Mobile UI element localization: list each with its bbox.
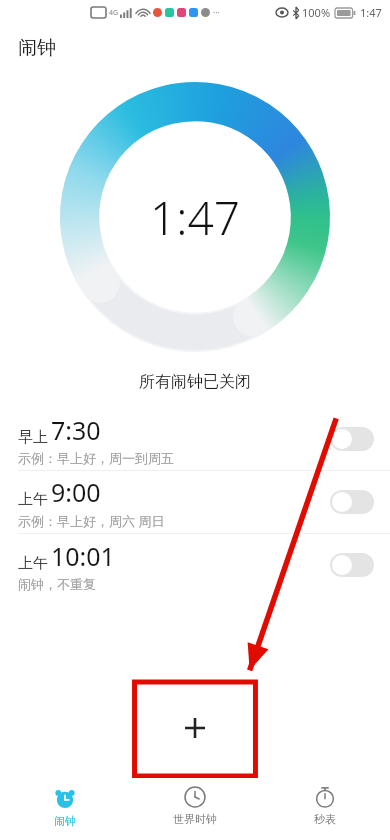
- staticText: 闹钟，不重复: [18, 576, 96, 592]
- button[interactable]: 上午: [0, 471, 390, 533]
- button[interactable]: 世界时钟: [130, 778, 260, 840]
- staticText: 世界时钟: [173, 812, 217, 826]
- staticText: 上午: [18, 554, 48, 573]
- staticText: 1:47: [150, 186, 241, 249]
- button[interactable]: Toggle alarm: [330, 490, 374, 514]
- staticText: 4G: [109, 8, 119, 18]
- staticText: 早上: [18, 428, 48, 447]
- staticText: 所有闹钟已关闭: [0, 372, 390, 392]
- button[interactable]: 闹钟: [0, 778, 130, 840]
- staticText: 10:01: [51, 539, 115, 573]
- button[interactable]: 早上: [0, 408, 390, 470]
- staticText: 闹钟: [18, 36, 56, 60]
- staticText: 100%: [302, 5, 331, 20]
- staticText: 上午: [18, 490, 48, 509]
- staticText: 7:30: [51, 413, 101, 447]
- staticText: 1:47: [360, 5, 382, 20]
- staticText: 示例：早上好，周六 周日: [18, 512, 165, 530]
- staticText: 秒表: [314, 812, 336, 826]
- button[interactable]: 秒表: [260, 778, 390, 840]
- button[interactable]: Add alarm: [162, 695, 228, 761]
- button[interactable]: Toggle alarm: [330, 553, 374, 577]
- staticText: 9:00: [51, 475, 101, 509]
- staticText: 闹钟: [54, 814, 76, 828]
- button[interactable]: Toggle alarm: [330, 427, 374, 451]
- staticText: 示例：早上好，周一到周五: [18, 450, 174, 466]
- staticText: ···: [213, 7, 220, 18]
- button[interactable]: 上午: [0, 534, 390, 596]
